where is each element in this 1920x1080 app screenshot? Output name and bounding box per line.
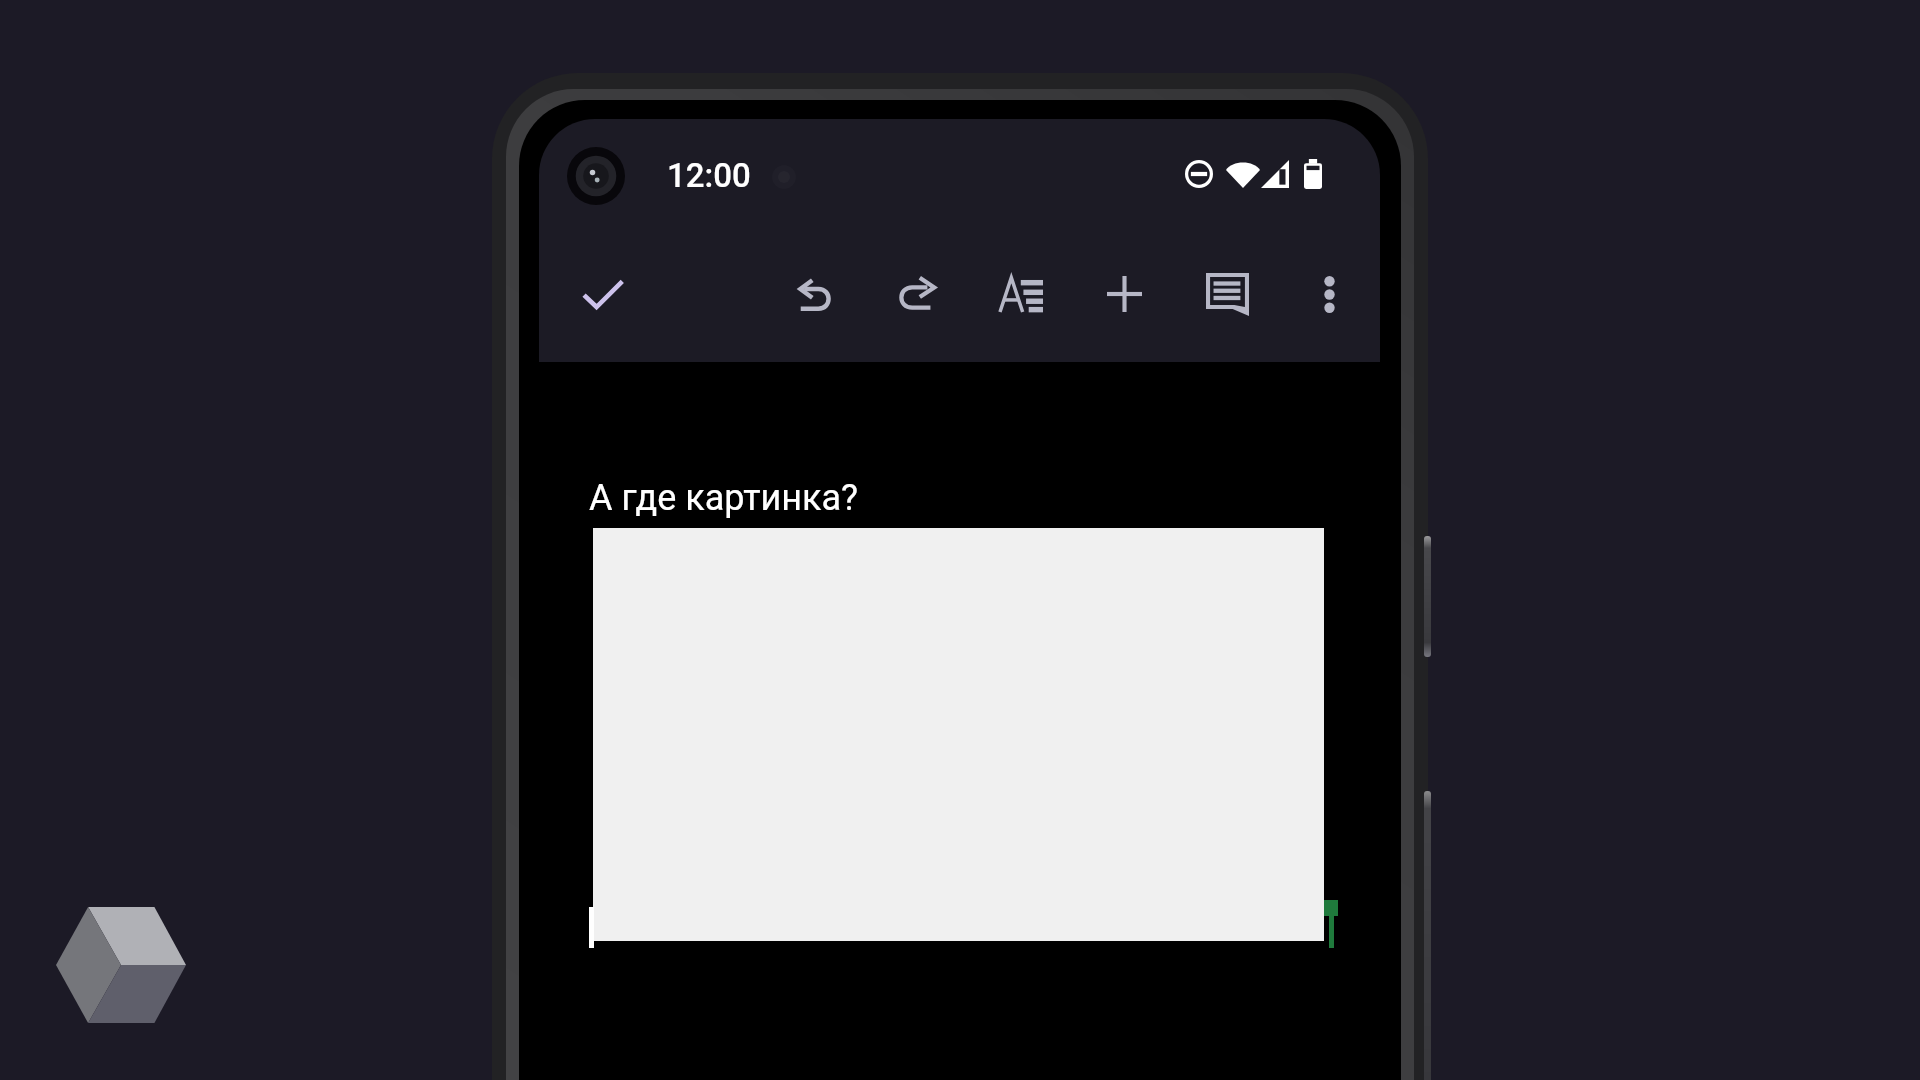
button[interactable]: Insert	[1080, 250, 1168, 338]
staticText: 12:00	[667, 156, 751, 195]
button[interactable]: More options	[1285, 250, 1373, 338]
button[interactable]: Text formatting	[977, 250, 1065, 338]
button[interactable]: Undo	[771, 250, 859, 338]
button[interactable]: Done	[559, 251, 647, 339]
button[interactable]: Comments	[1183, 250, 1271, 338]
staticText: А где картинка?	[589, 477, 859, 519]
button[interactable]: Redo	[872, 249, 960, 337]
